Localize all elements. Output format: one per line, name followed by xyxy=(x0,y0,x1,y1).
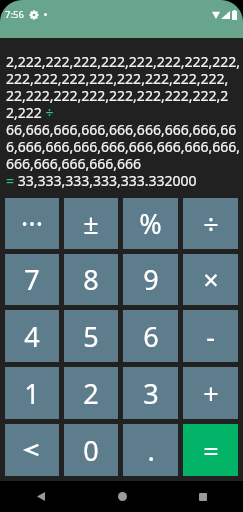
staticText: 4 xyxy=(24,318,40,355)
button[interactable]: = xyxy=(183,424,238,476)
button[interactable]: - xyxy=(183,310,238,362)
button[interactable]: 4 xyxy=(5,310,59,362)
button[interactable]: % xyxy=(123,198,178,249)
staticText: - xyxy=(206,318,215,355)
staticText: + xyxy=(203,375,219,412)
button[interactable]: Recent apps xyxy=(185,481,221,512)
staticText: 2,222,222,222,222,222,222,222,222, 222,2… xyxy=(6,52,240,190)
button[interactable]: 1 xyxy=(5,367,59,419)
button[interactable]: 5 xyxy=(64,310,118,362)
button[interactable] xyxy=(5,424,59,476)
button[interactable]: 9 xyxy=(123,254,178,305)
button[interactable]: . xyxy=(123,424,178,476)
staticText: 1 xyxy=(24,375,40,412)
staticText: 8 xyxy=(83,261,99,298)
staticText: % xyxy=(139,205,162,242)
staticText: . xyxy=(147,432,155,469)
button[interactable]: ± xyxy=(64,198,118,249)
staticText: ÷ xyxy=(203,205,219,242)
staticText: = xyxy=(203,432,219,469)
button[interactable]: Back xyxy=(23,481,59,512)
button[interactable] xyxy=(5,198,59,249)
button[interactable]: × xyxy=(183,254,238,305)
button[interactable]: 8 xyxy=(64,254,118,305)
staticText: ± xyxy=(83,205,99,242)
button[interactable]: Home xyxy=(104,481,140,512)
staticText: 9 xyxy=(143,261,159,298)
button[interactable]: 6 xyxy=(123,310,178,362)
staticText: 7 xyxy=(24,261,40,298)
button[interactable]: 7 xyxy=(5,254,59,305)
button[interactable]: 0 xyxy=(64,424,118,476)
staticText: 2 xyxy=(83,375,99,412)
staticText: × xyxy=(203,261,219,298)
staticText: 5 xyxy=(83,318,99,355)
staticText: 3 xyxy=(143,375,159,412)
button[interactable]: + xyxy=(183,367,238,419)
staticText: 6 xyxy=(143,318,159,355)
button[interactable]: ÷ xyxy=(183,198,238,249)
button[interactable]: 2 xyxy=(64,367,118,419)
button[interactable]: 3 xyxy=(123,367,178,419)
staticText: 0 xyxy=(83,432,99,469)
staticText: 7:56 xyxy=(5,8,24,21)
